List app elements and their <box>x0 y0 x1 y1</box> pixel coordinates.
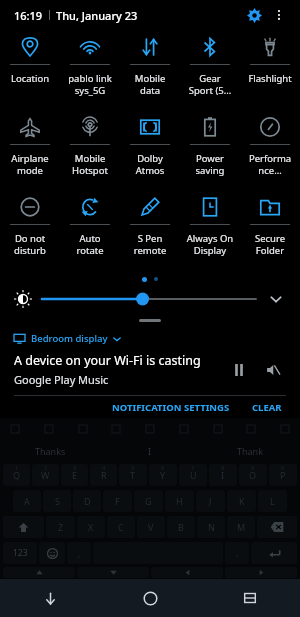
button[interactable]: 3 <box>61 464 88 486</box>
button[interactable]: Gear Sport (5… <box>180 30 240 110</box>
button[interactable]: Keyboard tool 6 <box>211 422 225 436</box>
button[interactable]: 6 <box>149 464 177 486</box>
button[interactable]: More options <box>268 4 290 26</box>
button[interactable]: Auto rotate <box>60 190 120 270</box>
button[interactable]: Secure Folder <box>240 190 300 270</box>
button[interactable]: Home <box>100 579 200 617</box>
button[interactable]: 5 <box>119 464 147 486</box>
button[interactable]: S Pen remote <box>120 190 180 270</box>
button[interactable]: Flashlight <box>240 30 300 110</box>
staticText: 16:19 <box>14 8 43 23</box>
button[interactable]: Z <box>46 516 75 538</box>
staticText: 8 <box>221 464 225 471</box>
button[interactable]: back <box>257 516 297 538</box>
button[interactable]: S <box>43 490 71 512</box>
button[interactable]: Performa nce… <box>240 110 300 190</box>
staticText: C <box>118 521 124 533</box>
staticText: , <box>78 547 81 559</box>
button[interactable]: 7 <box>179 464 207 486</box>
button[interactable]: Back <box>0 579 100 617</box>
button[interactable]: Keyboard tool 0 <box>8 422 22 436</box>
button[interactable]: Thanks <box>0 440 100 462</box>
button[interactable]: CLEAR <box>248 398 286 417</box>
staticText: . <box>236 547 239 559</box>
button[interactable]: G <box>134 490 163 512</box>
button[interactable]: 1 <box>3 464 30 486</box>
button[interactable]: Mobile data <box>120 30 180 110</box>
button[interactable]: Keyboard tool 3 <box>109 422 123 436</box>
staticText: H <box>176 495 183 507</box>
button[interactable]: B <box>167 516 195 538</box>
staticText: Y <box>160 469 166 481</box>
button[interactable]: Location <box>0 30 60 110</box>
button[interactable]: 9 <box>239 464 267 486</box>
staticText: B <box>178 521 184 533</box>
staticText: S Pen remote <box>120 232 180 257</box>
staticText: 9 <box>251 464 255 471</box>
button[interactable]: Airplane mode <box>0 110 60 190</box>
staticText: K <box>239 495 245 507</box>
button[interactable]: enter <box>251 542 297 564</box>
staticText: Do not disturb <box>0 232 60 257</box>
button[interactable]: Expand brightness <box>266 289 286 309</box>
button[interactable]: 123 <box>3 542 37 564</box>
staticText: O <box>249 469 257 481</box>
staticText: I <box>148 445 152 457</box>
button[interactable]: Arrow left <box>151 567 223 578</box>
staticText: Thu, January 23 <box>56 8 138 23</box>
button[interactable]: shift <box>3 516 44 538</box>
button[interactable]: M <box>227 516 255 538</box>
button[interactable]: Do not disturb <box>0 190 60 270</box>
staticText: Location <box>0 72 60 85</box>
button[interactable]: Power saving <box>180 110 240 190</box>
button[interactable]: Arrow down <box>77 567 149 578</box>
button[interactable]: Keyboard tool 8 <box>278 422 292 436</box>
button[interactable]: A <box>13 490 41 512</box>
button[interactable]: Arrow up <box>3 567 75 578</box>
button[interactable]: Mobile Hotspot <box>60 110 120 190</box>
button[interactable]: Bedroom display <box>14 332 121 345</box>
button[interactable]: Always On Display <box>180 190 240 270</box>
button[interactable]: K <box>227 490 256 512</box>
button[interactable]: Thank <box>200 440 300 462</box>
button[interactable]: 0 <box>269 464 297 486</box>
button[interactable]: F <box>103 490 132 512</box>
button[interactable]: Keyboard tool 1 <box>42 422 56 436</box>
button[interactable]: pablo link sys_5G <box>60 30 120 110</box>
button[interactable] <box>42 288 256 310</box>
staticText: Thanks <box>35 445 66 457</box>
button[interactable]: Keyboard tool 2 <box>76 422 90 436</box>
button[interactable]: 2 <box>32 464 59 486</box>
button[interactable]: Mute <box>260 357 286 383</box>
button[interactable]: emoji <box>39 542 65 564</box>
button[interactable]: 4 <box>90 464 117 486</box>
button[interactable]: H <box>165 490 194 512</box>
button[interactable]: Keyboard tool 7 <box>244 422 258 436</box>
button[interactable]: Dolby Atmos <box>120 110 180 190</box>
button[interactable]: N <box>197 516 225 538</box>
staticText: Mobile Hotspot <box>60 152 120 177</box>
button[interactable]: D <box>73 490 101 512</box>
button[interactable]: Settings <box>240 1 268 29</box>
button[interactable]: 8 <box>209 464 237 486</box>
button[interactable]: Keyboard tool 4 <box>143 422 157 436</box>
button[interactable]: Arrow right <box>225 567 297 578</box>
staticText: L <box>270 495 275 507</box>
button[interactable]: Keyboard tool 5 <box>177 422 191 436</box>
button[interactable]: Recents <box>200 579 300 617</box>
button[interactable]: C <box>107 516 135 538</box>
staticText: Gear Sport (5… <box>180 72 240 97</box>
button[interactable]: X <box>77 516 105 538</box>
button[interactable]: V <box>137 516 165 538</box>
button[interactable]: Brightness <box>14 290 32 308</box>
button[interactable]: NOTIFICATION SETTINGS <box>108 398 234 417</box>
button[interactable]: Pause <box>226 357 252 383</box>
staticText: J <box>209 495 212 507</box>
staticText: E <box>72 469 78 481</box>
